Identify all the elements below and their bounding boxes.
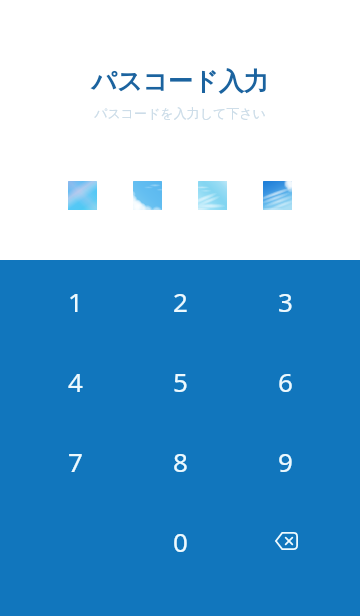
staticText: パスコードを入力して下さい	[94, 105, 266, 121]
button[interactable]: 8	[128, 421, 233, 501]
button[interactable]: 3	[233, 261, 338, 341]
staticText: 9	[278, 444, 293, 479]
staticText: 7	[68, 444, 83, 479]
button[interactable]: 6	[233, 341, 338, 421]
button[interactable]: Delete	[233, 501, 338, 581]
staticText: 6	[278, 364, 293, 399]
staticText: 8	[173, 444, 188, 479]
staticText: 2	[173, 284, 188, 319]
staticText: 0	[173, 524, 188, 559]
button[interactable]: 5	[128, 341, 233, 421]
button[interactable]: 1	[23, 261, 128, 341]
staticText: 3	[278, 284, 293, 319]
staticText: パスコード入力	[91, 66, 269, 97]
staticText: 1	[68, 284, 83, 319]
button[interactable]: 7	[23, 421, 128, 501]
other: Passcode indicator	[0, 181, 360, 210]
button[interactable]: 9	[233, 421, 338, 501]
button[interactable]: 0	[128, 501, 233, 581]
staticText: 4	[68, 364, 83, 399]
staticText: 5	[173, 364, 188, 399]
button[interactable]: 2	[128, 261, 233, 341]
button[interactable]: 4	[23, 341, 128, 421]
